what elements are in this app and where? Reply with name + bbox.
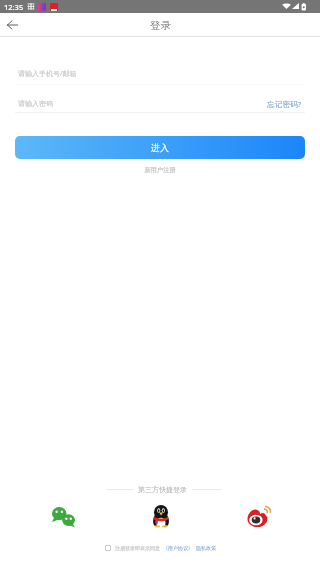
staticText: 进入 <box>151 142 169 153</box>
button[interactable]: 隐私政策 <box>196 545 216 551</box>
staticText: 第三方快捷登录 <box>138 485 187 494</box>
staticText: 12:35 <box>4 2 24 12</box>
staticText: 请输入密码 <box>18 99 53 108</box>
button[interactable]: QQ login <box>145 500 177 532</box>
button[interactable]: 《用户协议》 <box>163 545 193 551</box>
staticText: 注册登录即表示同意 <box>115 545 160 551</box>
button[interactable]: Back <box>0 13 24 37</box>
button[interactable]: Weibo login <box>243 500 275 532</box>
button[interactable]: 新用户注册 <box>144 166 176 174</box>
button[interactable]: WeChat login <box>47 500 79 532</box>
staticText: 请输入手机号/邮箱 <box>18 69 77 79</box>
staticText: 登录 <box>150 19 171 32</box>
button[interactable]: 忘记密码? <box>267 99 302 110</box>
button[interactable]: Agree to terms checkbox <box>105 545 111 551</box>
button[interactable]: 进入 <box>15 136 305 159</box>
